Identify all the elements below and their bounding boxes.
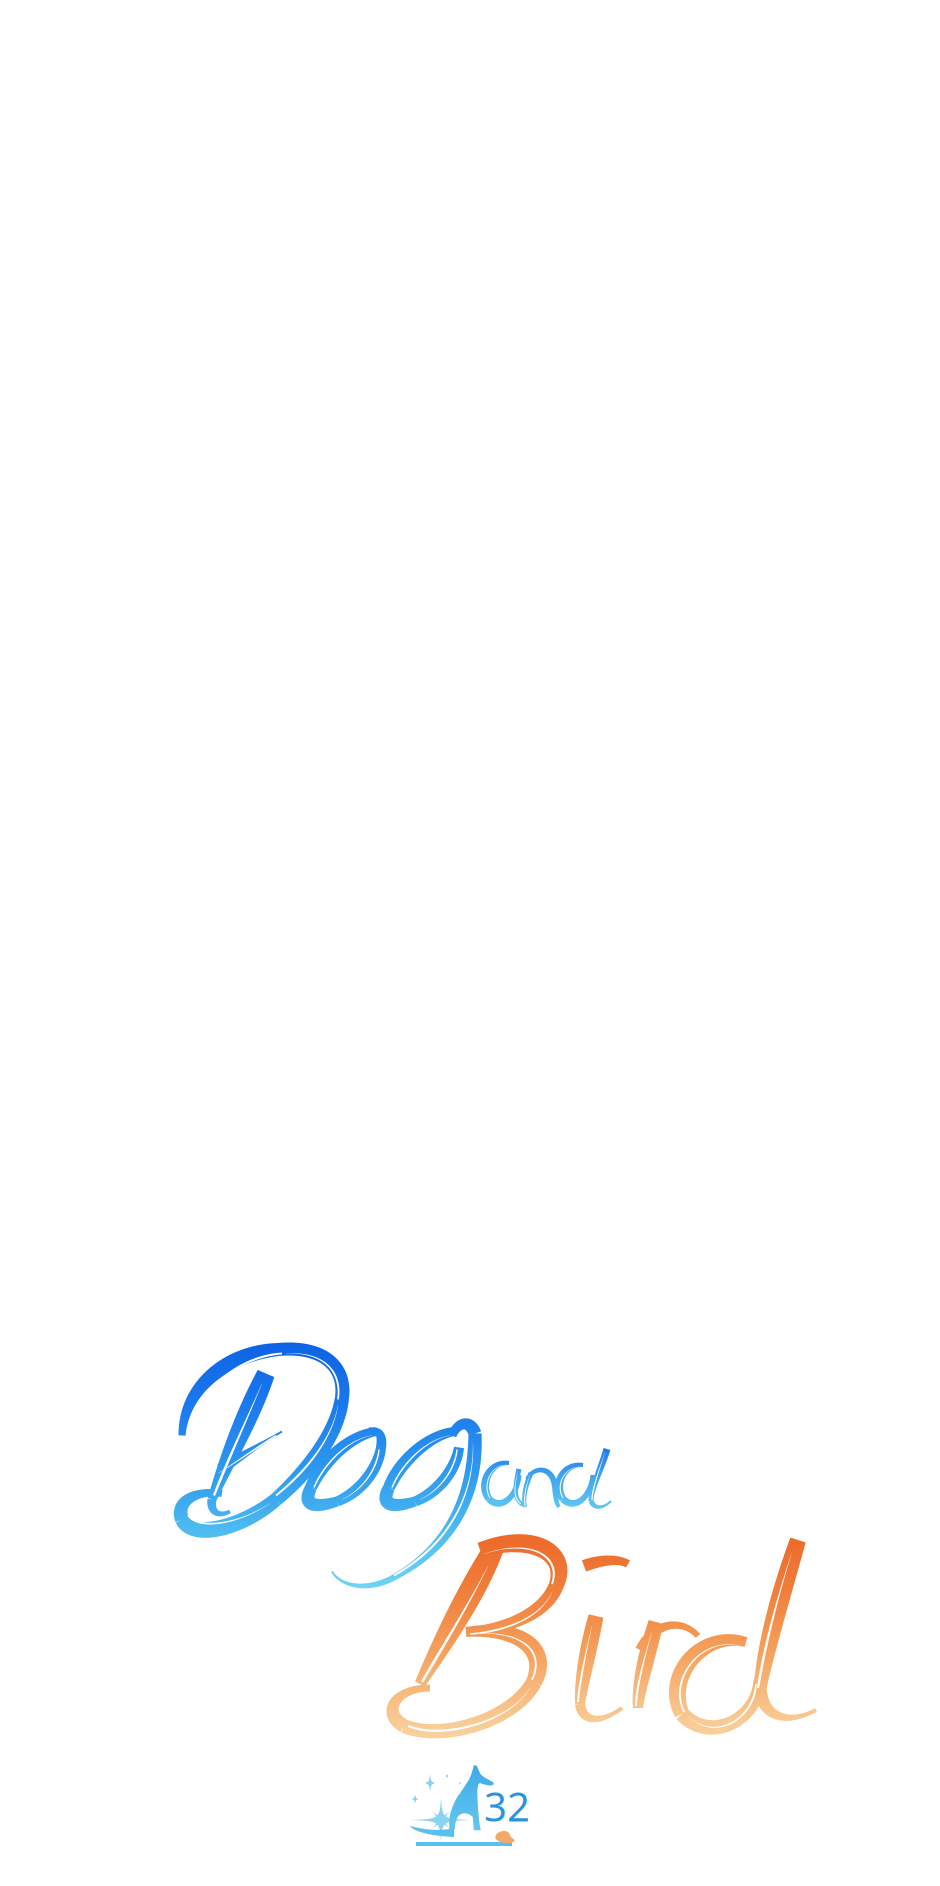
staticText: 32 (484, 1779, 530, 1832)
